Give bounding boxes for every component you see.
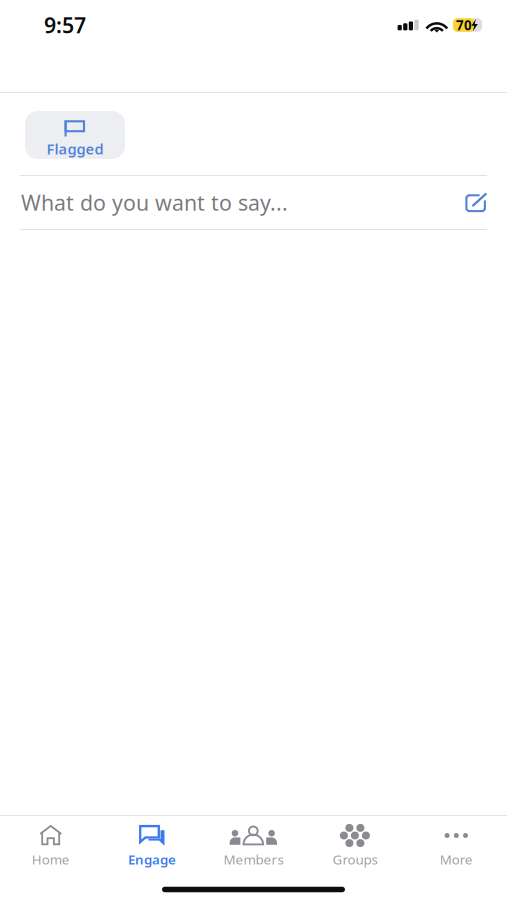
button[interactable]: Flagged <box>25 111 125 159</box>
button[interactable]: New post <box>451 176 507 229</box>
button[interactable]: What do you want to say... <box>0 176 451 229</box>
staticText: Members <box>223 850 283 868</box>
staticText: Groups <box>332 850 377 868</box>
button[interactable]: More <box>406 815 507 875</box>
button[interactable]: Groups <box>304 815 406 875</box>
button[interactable]: Home <box>0 815 101 875</box>
button[interactable]: Engage <box>101 815 203 875</box>
button[interactable]: Members <box>203 815 304 875</box>
staticText: 70 <box>456 16 472 34</box>
staticText: More <box>440 850 473 868</box>
staticText: What do you want to say... <box>21 188 288 217</box>
staticText: Engage <box>128 850 176 868</box>
staticText: Home <box>32 850 70 868</box>
staticText: 9:57 <box>44 11 86 39</box>
staticText: Flagged <box>46 139 103 158</box>
